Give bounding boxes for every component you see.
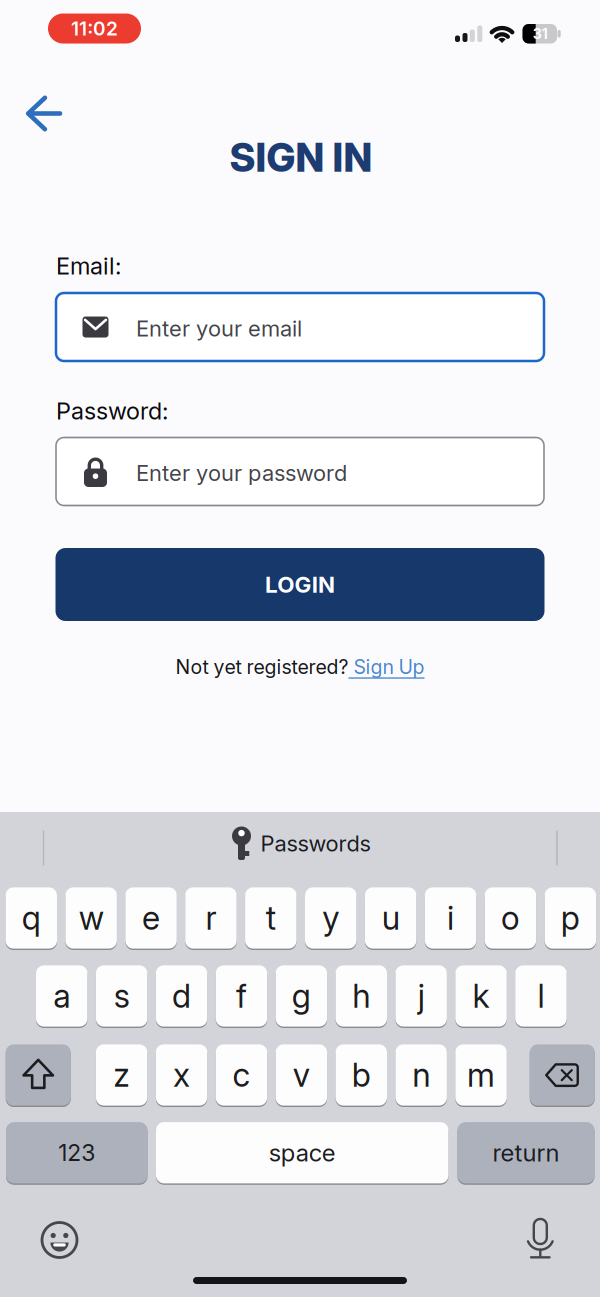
staticText: c	[232, 1055, 250, 1095]
button[interactable]: Back	[20, 89, 68, 137]
button[interactable]: o	[485, 886, 536, 950]
staticText: Not yet registered?	[175, 655, 348, 679]
staticText: p	[561, 898, 580, 938]
staticText: i	[447, 898, 454, 938]
button[interactable]: Shift	[6, 1043, 71, 1107]
staticText: 31	[533, 25, 548, 42]
button[interactable]: g	[276, 964, 327, 1028]
button[interactable]: l	[515, 964, 567, 1028]
button[interactable]: w	[65, 886, 117, 950]
staticText: w	[79, 898, 104, 938]
button[interactable]: q	[5, 886, 57, 950]
staticText: y	[322, 898, 339, 938]
staticText: 123	[58, 1139, 95, 1167]
button[interactable]: y	[305, 886, 356, 950]
staticText: u	[382, 898, 400, 938]
button[interactable]: s	[96, 964, 147, 1028]
button[interactable]: Enter your email	[56, 293, 544, 361]
button[interactable]: j	[395, 964, 447, 1028]
staticText: SIGN IN	[229, 134, 372, 181]
button[interactable]: a	[36, 964, 87, 1028]
button[interactable]: Passwords	[231, 826, 370, 860]
button[interactable]: c	[216, 1043, 267, 1107]
button[interactable]: m	[455, 1043, 507, 1107]
button[interactable]: f	[216, 964, 267, 1028]
button[interactable]: z	[96, 1043, 147, 1107]
staticText: Passwords	[260, 830, 370, 857]
staticText: n	[412, 1055, 430, 1095]
button[interactable]: Dictate	[527, 1219, 554, 1259]
button[interactable]: Emoji	[42, 1222, 77, 1257]
button[interactable]: k	[455, 964, 507, 1028]
staticText: a	[53, 976, 70, 1016]
button[interactable]: r	[185, 886, 237, 950]
staticText: q	[22, 898, 41, 938]
staticText: r	[205, 898, 216, 938]
button[interactable]: i	[425, 886, 476, 950]
button[interactable]: t	[245, 886, 297, 950]
staticText: l	[537, 976, 544, 1016]
staticText: Enter your password	[136, 460, 347, 486]
staticText: 11:02	[71, 17, 118, 40]
button[interactable]: Login	[55, 548, 544, 621]
button[interactable]: return	[457, 1121, 594, 1184]
staticText: Email:	[56, 252, 121, 280]
button[interactable]: Sign Up	[348, 655, 424, 679]
button[interactable]: n	[395, 1043, 447, 1107]
staticText: x	[173, 1055, 190, 1095]
staticText: h	[352, 976, 370, 1016]
button[interactable]: h	[335, 964, 387, 1028]
staticText: Password:	[56, 397, 168, 425]
staticText: e	[142, 898, 160, 938]
staticText: Enter your email	[136, 315, 302, 342]
staticText: o	[501, 898, 520, 938]
button[interactable]: u	[365, 886, 416, 950]
staticText: g	[292, 976, 311, 1016]
staticText: Sign Up	[348, 655, 424, 679]
button[interactable]: Enter your password	[56, 437, 544, 505]
staticText: t	[266, 898, 276, 938]
button[interactable]: v	[276, 1043, 327, 1107]
button[interactable]: 123	[6, 1121, 147, 1184]
staticText: v	[293, 1055, 310, 1095]
staticText: b	[352, 1055, 371, 1095]
staticText: LOGIN	[265, 571, 335, 598]
staticText: z	[113, 1055, 130, 1095]
staticText: j	[418, 976, 425, 1016]
button[interactable]: p	[545, 886, 596, 950]
button[interactable]: x	[156, 1043, 207, 1107]
button[interactable]: d	[156, 964, 207, 1028]
button[interactable]: space	[156, 1121, 448, 1184]
staticText: k	[473, 976, 490, 1016]
staticText: space	[269, 1138, 336, 1167]
button[interactable]: Stop screen recording	[48, 13, 141, 43]
staticText: s	[114, 976, 130, 1016]
staticText: m	[467, 1055, 495, 1095]
button[interactable]: e	[125, 886, 177, 950]
staticText: return	[492, 1138, 559, 1167]
button[interactable]: Delete	[530, 1043, 595, 1107]
staticText: d	[172, 976, 191, 1016]
staticText: f	[236, 976, 247, 1016]
button[interactable]: b	[335, 1043, 387, 1107]
